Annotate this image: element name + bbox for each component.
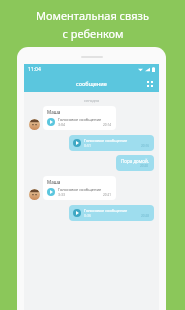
staticText: Голосовое сообщение <box>84 138 128 143</box>
staticText: Маша <box>47 109 61 115</box>
staticText: 3:33 <box>58 192 65 197</box>
staticText: с ребенком <box>62 26 124 41</box>
staticText: Моментальная связь <box>36 8 149 23</box>
staticText: 11:04 <box>28 66 41 73</box>
button[interactable]: Меню <box>145 79 155 89</box>
staticText: 0:51 <box>84 143 91 148</box>
staticText: сегодня <box>84 98 100 103</box>
staticText: 20:20 <box>140 164 149 168</box>
button[interactable]: Маша <box>43 106 116 130</box>
staticText: Пора домой. <box>121 158 149 164</box>
staticText: 20:28 <box>141 214 150 218</box>
staticText: Маша <box>47 179 61 185</box>
button[interactable]: Голосовое сообщение <box>69 135 154 151</box>
staticText: Голосовое сообщение <box>84 208 128 213</box>
button[interactable]: Маша <box>43 176 116 200</box>
button[interactable]: Голосовое сообщение <box>69 205 154 221</box>
staticText: сообщение <box>76 80 107 87</box>
staticText: 20:21 <box>103 193 112 197</box>
staticText: 20:16 <box>141 144 150 148</box>
staticText: Голосовое сообщение <box>58 187 102 192</box>
button[interactable]: Пора домой. <box>116 155 154 171</box>
staticText: 3:04 <box>58 122 65 127</box>
staticText: Голосовое сообщение <box>58 117 102 122</box>
staticText: 20:14 <box>103 123 112 127</box>
staticText: 0:36 <box>84 213 91 218</box>
